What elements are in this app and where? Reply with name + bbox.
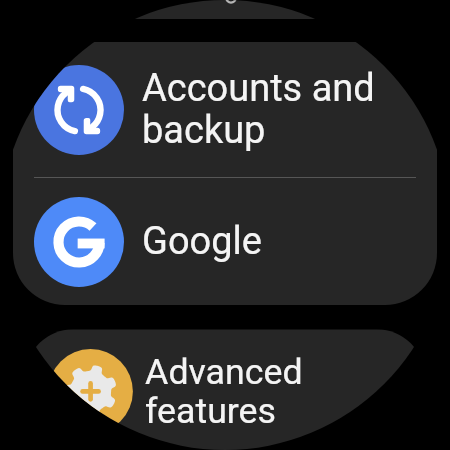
button[interactable]: Accounts and backup [13,42,437,177]
other: Advanced features [48,349,133,434]
button[interactable]: Previous setting [13,0,437,19]
other: Accounts and backup [34,65,124,155]
staticText: Google [142,219,262,264]
staticText: Accounts and backup [142,66,423,153]
staticText: Advanced features [145,351,411,433]
button[interactable]: Advanced features [26,329,424,450]
other: Google [34,197,124,287]
button[interactable]: Google [13,178,437,305]
